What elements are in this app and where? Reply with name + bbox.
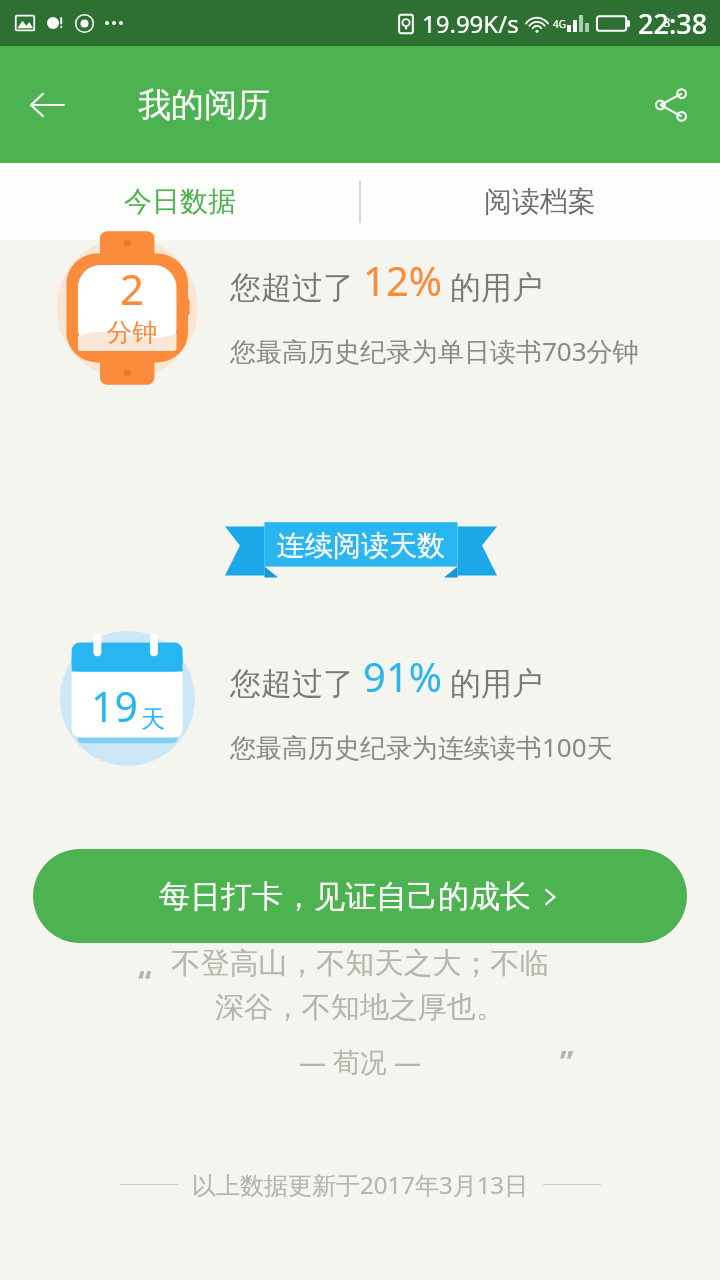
staticText: 阅读档案: [484, 184, 596, 219]
staticText: 19: [91, 678, 138, 734]
staticText: 的用户: [442, 265, 544, 307]
staticText: 每日打卡，见证自己的成长: [159, 877, 531, 916]
staticText: 的用户: [442, 661, 544, 703]
button[interactable]: 阅读档案: [360, 163, 720, 240]
button[interactable]: 每日打卡，见证自己的成长: [33, 849, 687, 943]
staticText: — 荀况 —: [299, 1043, 422, 1080]
staticText: 天: [141, 704, 165, 734]
staticText: 我的阅历: [138, 84, 270, 126]
staticText: 分钟: [107, 317, 157, 348]
staticText: 您最高历史纪录为连续读书100天: [230, 729, 613, 765]
staticText: 您最高历史纪录为单日读书703分钟: [230, 333, 639, 369]
staticText: 您超过了: [230, 661, 363, 703]
staticText: 您超过了: [230, 265, 363, 307]
staticText: 12%: [363, 253, 442, 307]
staticText: 连续阅读天数: [277, 528, 445, 563]
staticText: 2: [120, 260, 145, 317]
button[interactable]: Share: [640, 74, 702, 136]
staticText: 不登高山，不知天之大；不临深谷，不知地之厚也。: [160, 945, 560, 1025]
staticText: 4G: [553, 17, 566, 31]
staticText: 19.99K/s: [422, 7, 519, 40]
button[interactable]: Back: [16, 74, 78, 136]
staticText: 今日数据: [124, 184, 236, 219]
staticText: ”: [560, 1041, 574, 1082]
staticText: 22:38: [638, 5, 708, 42]
staticText: 91%: [363, 649, 442, 703]
staticText: “: [138, 961, 152, 1002]
button[interactable]: 今日数据: [0, 163, 360, 240]
staticText: 8: [663, 13, 671, 31]
staticText: 以上数据更新于2017年3月13日: [192, 1168, 529, 1201]
